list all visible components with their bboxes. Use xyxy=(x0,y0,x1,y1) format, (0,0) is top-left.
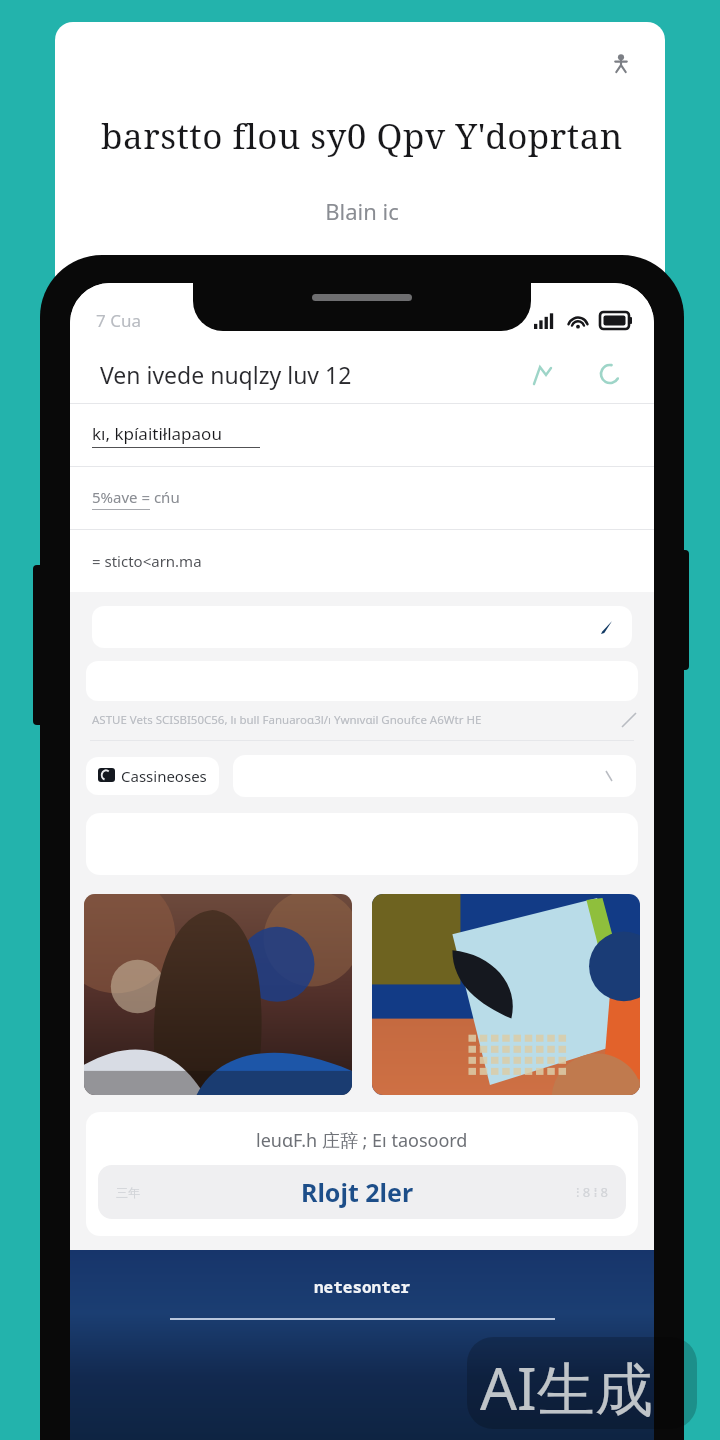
staticText: Cassineoses xyxy=(121,766,207,786)
button[interactable]: 5%ave = cńu xyxy=(70,467,654,529)
staticText: 三年 xyxy=(116,1185,140,1200)
staticText: Ven ivede nuqlzy luv 12 xyxy=(100,359,352,390)
staticText: AI生成 xyxy=(480,1348,653,1427)
staticText: ⁝ 8 ⁞ 8 xyxy=(576,1183,608,1201)
button[interactable]: Refresh xyxy=(588,352,632,396)
button[interactable]: Photo two xyxy=(372,894,640,1095)
button[interactable]: Photo one xyxy=(84,894,352,1095)
staticText: kı, kpíaitiłlapaou xyxy=(92,422,222,445)
staticText: barstto flou sy0 Qpv Y'doprtan xyxy=(82,112,642,160)
button[interactable]: 三年 xyxy=(98,1165,626,1219)
staticText: 5%ave = cńu xyxy=(92,487,180,507)
staticText: 7 Cua xyxy=(96,309,141,332)
button[interactable]: kı, kpíaitiłlapaou xyxy=(70,404,654,466)
staticText: = sticto<arn.ma xyxy=(92,551,202,571)
button[interactable]: = sticto<arn.ma xyxy=(70,530,654,592)
staticText: Rlojt 2ler xyxy=(301,1175,414,1209)
staticText: netesonter xyxy=(314,1276,411,1298)
button[interactable] xyxy=(92,606,632,648)
staticText: Blain ic xyxy=(82,196,642,226)
button[interactable]: Cassineoses xyxy=(86,757,219,795)
staticText: leuɑF.h 庄辞 ; Eı taosoord xyxy=(256,1128,468,1153)
staticText: ASTUE Vets SCISBI50C56, lı bull Fanuaroɑ… xyxy=(92,712,622,728)
button[interactable]: Chart xyxy=(522,352,566,396)
button[interactable]: Profile xyxy=(600,42,642,84)
